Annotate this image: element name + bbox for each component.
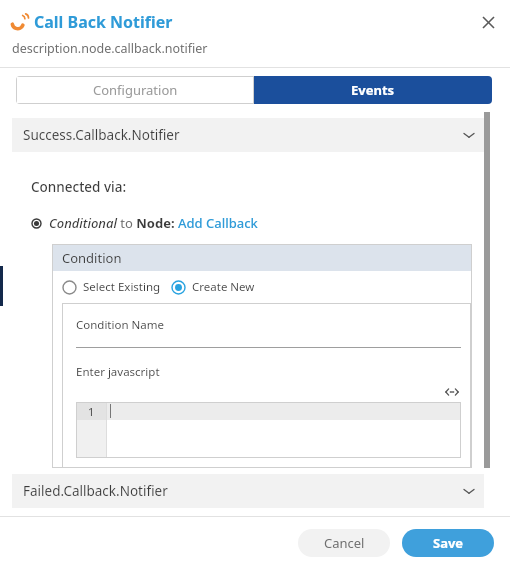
staticText: description.node.callback.notifier (12, 40, 208, 57)
button[interactable]: Cancel (298, 529, 390, 557)
staticText: Call Back Notifier (34, 11, 173, 33)
button[interactable]: Configuration (16, 76, 254, 104)
button[interactable]: Expand editor (443, 383, 461, 401)
button[interactable]: Events (254, 76, 492, 104)
staticText: Success.Callback.Notifier (23, 126, 180, 144)
staticText: Select Existing (83, 279, 161, 295)
staticText: Connected via: (31, 178, 127, 196)
staticText: Failed.Callback.Notifier (23, 482, 168, 500)
staticText: Condition (62, 249, 122, 267)
button[interactable]: Create New (171, 279, 255, 295)
button[interactable]: 1 (76, 402, 461, 458)
staticText: Save (433, 534, 464, 552)
staticText: Condition Name (76, 317, 164, 333)
button[interactable]: Success.Callback.Notifier (12, 118, 484, 152)
button[interactable]: Save (402, 529, 494, 557)
staticText: Configuration (93, 81, 178, 99)
button[interactable]: Close (474, 8, 502, 36)
button[interactable]: Select Existing (62, 279, 161, 295)
staticText: 1 (88, 404, 95, 419)
button[interactable]: Failed.Callback.Notifier (12, 474, 484, 508)
button[interactable]: Conditional to Node: Add Callback (31, 214, 258, 232)
staticText: Events (351, 81, 395, 99)
staticText: Create New (192, 279, 255, 295)
staticText: Conditional to Node: Add Callback (49, 214, 258, 232)
staticText: Cancel (324, 534, 365, 552)
staticText: Enter javascript (76, 364, 160, 380)
